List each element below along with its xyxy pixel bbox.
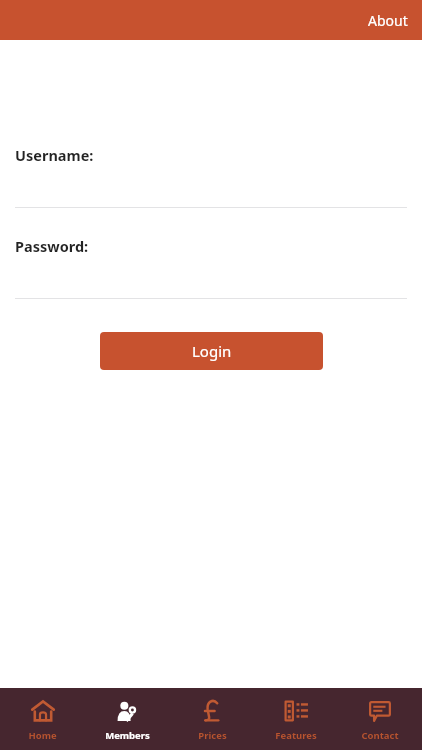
button[interactable]: Prices — [170, 690, 254, 748]
staticText: Features — [275, 729, 317, 742]
button[interactable]: About — [354, 3, 422, 38]
button[interactable]: Login — [100, 332, 323, 370]
staticText: Prices — [198, 729, 227, 742]
button[interactable]: Members — [85, 690, 170, 748]
staticText: Username: — [15, 145, 94, 165]
staticText: Home — [28, 729, 57, 742]
staticText: Password: — [15, 236, 89, 256]
button[interactable]: Contact — [338, 690, 422, 748]
staticText: Members — [105, 729, 150, 742]
staticText: About — [368, 11, 408, 30]
staticText: Login — [192, 341, 232, 361]
button[interactable]: Home — [0, 690, 85, 748]
staticText: Contact — [361, 729, 399, 742]
button[interactable]: Features — [254, 690, 338, 748]
